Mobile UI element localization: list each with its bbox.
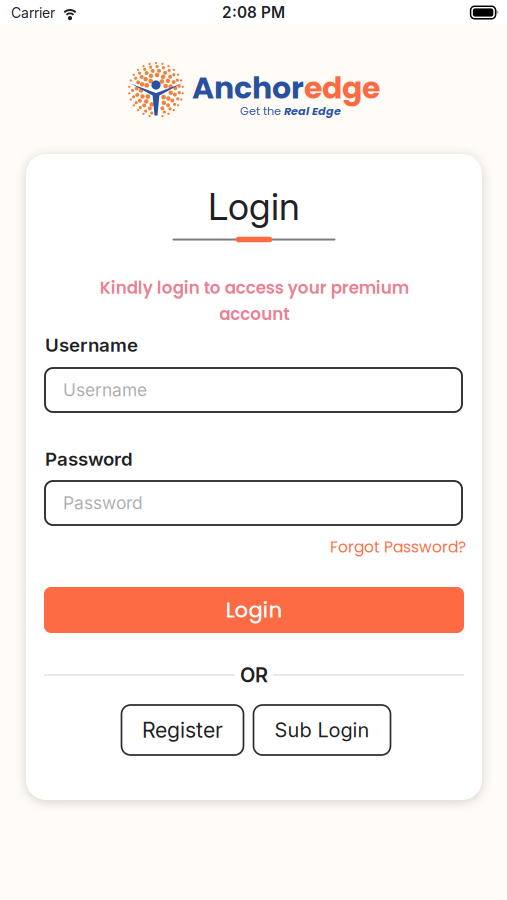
staticText: Get the <box>240 103 281 119</box>
staticText: Real Edge <box>284 103 341 119</box>
staticText: OR <box>240 663 268 687</box>
staticText: Password <box>63 492 143 513</box>
staticText: Username <box>45 334 138 356</box>
staticText: Kindly login to access your premium acco… <box>99 276 408 326</box>
button[interactable]: Register <box>121 705 243 755</box>
staticText: 2:08 PM <box>222 3 285 22</box>
staticText: Login <box>208 184 300 229</box>
staticText: Carrier <box>11 4 55 21</box>
button[interactable]: Username <box>45 368 462 412</box>
button[interactable]: Sub Login <box>253 705 390 755</box>
staticText: edge <box>304 67 380 109</box>
staticText: Register <box>142 717 223 743</box>
staticText: Forgot Password? <box>330 536 466 558</box>
staticText: Anchor <box>192 67 304 109</box>
staticText: Login <box>225 595 282 625</box>
button[interactable]: Login <box>44 587 464 633</box>
staticText: Password <box>45 448 133 470</box>
staticText: Sub Login <box>274 718 369 742</box>
button[interactable]: Password <box>45 481 462 525</box>
button[interactable]: Forgot Password? <box>306 537 466 557</box>
staticText: Username <box>63 379 147 400</box>
